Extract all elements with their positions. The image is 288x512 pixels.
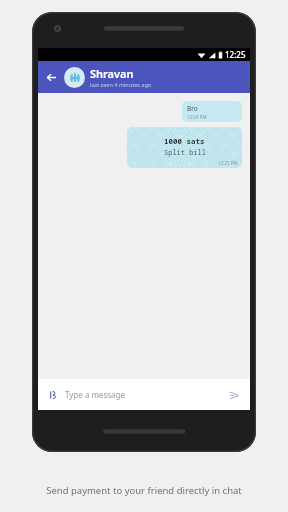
staticText: Send payment to your friend directly in … bbox=[46, 484, 242, 497]
staticText: Type a message bbox=[65, 389, 224, 400]
button[interactable]: Send bbox=[224, 385, 244, 405]
button[interactable]: 1000 sats bbox=[127, 127, 242, 168]
staticText: Split bill bbox=[164, 148, 206, 158]
button[interactable]: Back bbox=[38, 64, 64, 90]
staticText: last seen 4 minutes ago bbox=[90, 81, 152, 88]
button[interactable]: Bro bbox=[182, 101, 242, 122]
staticText: Shravan bbox=[90, 66, 134, 81]
staticText: Bro bbox=[187, 104, 198, 113]
button[interactable]: Send payment bbox=[38, 379, 250, 410]
button[interactable]: Send payment bbox=[46, 389, 58, 401]
staticText: 12:25 bbox=[225, 49, 246, 60]
staticText: 1000 sats bbox=[164, 136, 205, 146]
button[interactable]: Contact avatar bbox=[64, 67, 85, 88]
staticText: 12:25 PM bbox=[218, 160, 238, 166]
staticText: 12:24 PM bbox=[187, 114, 207, 120]
